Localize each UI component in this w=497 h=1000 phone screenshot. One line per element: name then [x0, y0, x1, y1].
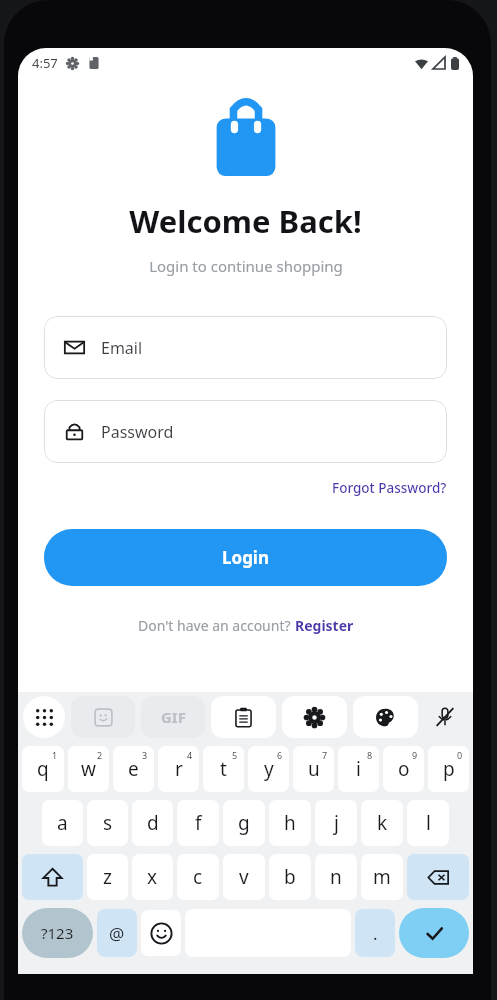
staticText: Welcome Back! — [129, 200, 362, 242]
staticText: w — [81, 756, 96, 782]
button[interactable]: Stickers — [71, 696, 135, 738]
button[interactable]: n — [315, 854, 357, 900]
button[interactable]: Theme — [353, 696, 418, 738]
staticText: a — [57, 810, 68, 836]
staticText: ?123 — [41, 923, 74, 943]
staticText: f — [195, 810, 202, 836]
staticText: 8 — [367, 749, 373, 761]
staticText: 3 — [142, 749, 148, 761]
staticText: Don't have an account? — [138, 616, 295, 635]
staticText: Login to continue shopping — [149, 256, 343, 276]
staticText: 1 — [52, 749, 58, 761]
staticText: Register — [295, 616, 354, 635]
staticText: Login — [222, 546, 270, 569]
staticText: t — [220, 756, 227, 782]
button[interactable]: r — [158, 746, 199, 792]
staticText: v — [239, 864, 249, 890]
staticText: x — [147, 864, 158, 890]
button[interactable]: Shift — [22, 854, 83, 900]
staticText: GIF — [161, 707, 186, 727]
button[interactable]: z — [87, 854, 128, 900]
button[interactable]: @ — [97, 909, 137, 957]
staticText: u — [308, 756, 320, 782]
staticText: e — [128, 756, 139, 782]
staticText: d — [147, 810, 159, 836]
button[interactable]: m — [361, 854, 403, 900]
staticText: n — [330, 864, 342, 890]
button[interactable]: t — [203, 746, 244, 792]
staticText: i — [356, 756, 361, 782]
button[interactable]: . — [355, 909, 395, 957]
staticText: 0 — [457, 749, 463, 761]
button[interactable]: p — [428, 746, 469, 792]
staticText: o — [398, 756, 410, 782]
staticText: Forgot Password? — [332, 479, 447, 497]
button[interactable]: Password — [44, 400, 447, 463]
button[interactable]: Forgot Password? — [328, 475, 451, 501]
button[interactable]: s — [87, 800, 128, 846]
button[interactable]: w — [68, 746, 109, 792]
button[interactable]: j — [315, 800, 357, 846]
button[interactable]: k — [361, 800, 403, 846]
staticText: . — [373, 922, 378, 945]
button[interactable]: Enter — [399, 908, 469, 958]
staticText: Email — [101, 337, 143, 359]
button[interactable]: l — [407, 800, 449, 846]
button[interactable]: Keyboard apps — [23, 696, 65, 738]
button[interactable]: o — [383, 746, 424, 792]
button[interactable]: Settings — [282, 696, 347, 738]
staticText: 6 — [277, 749, 283, 761]
staticText: h — [284, 810, 296, 836]
staticText: @ — [109, 922, 125, 945]
staticText: p — [443, 756, 455, 782]
button[interactable]: Voice input off — [426, 696, 464, 738]
staticText: j — [334, 810, 339, 836]
staticText: g — [238, 810, 250, 836]
button[interactable]: y — [248, 746, 289, 792]
staticText: z — [103, 864, 112, 890]
button[interactable]: v — [223, 854, 265, 900]
staticText: 2 — [97, 749, 103, 761]
button[interactable]: Backspace — [407, 854, 469, 900]
staticText: c — [193, 864, 203, 890]
button[interactable]: d — [132, 800, 173, 846]
button[interactable]: f — [177, 800, 219, 846]
staticText: s — [103, 810, 113, 836]
staticText: 4:57 — [32, 54, 58, 72]
button[interactable]: h — [269, 800, 311, 846]
button[interactable]: x — [132, 854, 173, 900]
button[interactable]: g — [223, 800, 265, 846]
staticText: 7 — [322, 749, 328, 761]
staticText: m — [373, 864, 391, 890]
staticText: k — [377, 810, 388, 836]
staticText: 4 — [187, 749, 193, 761]
button[interactable]: Clipboard — [211, 696, 276, 738]
staticText: l — [426, 810, 431, 836]
staticText: y — [264, 756, 274, 782]
staticText: b — [284, 864, 296, 890]
button[interactable]: Email — [44, 316, 447, 379]
button[interactable]: a — [42, 800, 83, 846]
button[interactable]: u — [293, 746, 334, 792]
button[interactable]: e — [113, 746, 154, 792]
staticText: r — [175, 756, 183, 782]
button[interactable]: i — [338, 746, 379, 792]
button[interactable]: Emoji — [141, 910, 181, 956]
button[interactable]: ?123 — [22, 908, 93, 958]
staticText: 9 — [412, 749, 418, 761]
button[interactable]: b — [269, 854, 311, 900]
button[interactable]: GIF — [141, 696, 205, 738]
button[interactable]: Login — [44, 529, 447, 586]
staticText: q — [37, 756, 49, 782]
button[interactable]: Register — [295, 616, 354, 635]
button[interactable]: q — [22, 746, 64, 792]
button[interactable]: c — [177, 854, 219, 900]
staticText: Password — [101, 421, 174, 443]
staticText: 5 — [232, 749, 238, 761]
